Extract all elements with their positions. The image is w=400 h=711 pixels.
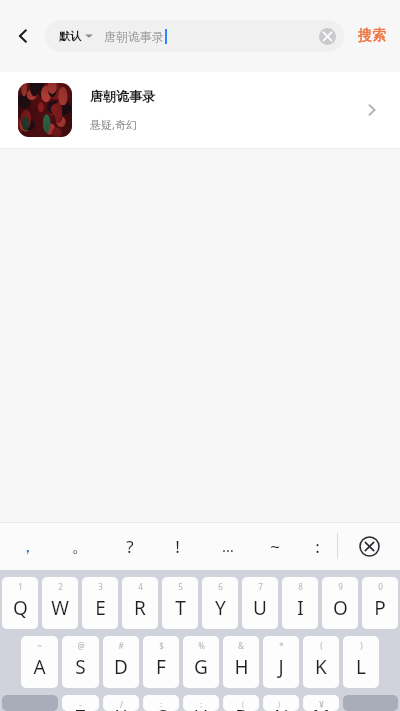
staticText: Z [75,704,86,711]
button[interactable]: 5 [162,577,198,629]
staticText: 唐朝诡事录 [104,29,164,44]
staticText: G [194,654,208,680]
staticText: Q [13,595,28,621]
button[interactable]: 唐朝诡事录 [0,72,400,148]
button[interactable]: # [103,636,139,688]
staticText: Y [215,595,226,621]
staticText: ¥ [319,699,324,710]
staticText: L [356,654,366,680]
staticText: 唐朝诡事录 [90,88,155,104]
staticText: ： [157,699,165,709]
button[interactable]: : [297,522,337,570]
staticText: C [155,704,168,711]
button[interactable]: 6 [202,577,238,629]
button[interactable]: ¥ [303,695,339,711]
button[interactable]: … [202,522,253,570]
button[interactable]: / [103,695,139,711]
staticText: U [253,595,267,621]
button[interactable]: @ [62,636,99,688]
button[interactable]: 0 [362,577,398,629]
button[interactable]: 7 [242,577,278,629]
staticText: * [279,640,284,651]
staticText: 6 [218,581,223,592]
button[interactable]: $ [143,636,179,688]
staticText: 7 [258,581,263,592]
staticText: 悬疑,奇幻 [90,117,137,132]
button[interactable]: 1 [2,577,38,629]
button[interactable]: ( [303,636,339,688]
button[interactable]: 3 [82,577,118,629]
staticText: S [75,654,86,680]
button[interactable]: ) [343,636,379,688]
staticText: V [195,704,207,711]
staticText: H [234,654,249,680]
staticText: ( [320,640,323,651]
staticText: T [175,595,186,621]
button[interactable]: ， [0,522,54,570]
button[interactable]: 9 [322,577,358,629]
button[interactable]: 8 [282,577,318,629]
button[interactable]: 。 [54,522,107,570]
staticText: （ [237,699,245,709]
staticText: E [95,595,106,621]
staticText: $ [159,640,164,651]
button[interactable]: 2 [42,577,78,629]
staticText: @ [77,640,85,651]
staticText: 。 [72,536,89,557]
staticText: ! [175,535,180,558]
staticText: 3 [98,581,103,592]
button[interactable]: * [263,636,299,688]
staticText: 1 [18,581,23,592]
staticText: % [198,640,205,651]
button[interactable]: ~ [253,522,297,570]
button[interactable]: 默认 [45,20,344,52]
button[interactable]: ~ [21,636,58,688]
staticText: O [333,595,348,621]
button[interactable]: ： [143,695,179,711]
button[interactable]: Clear text [312,21,342,51]
button[interactable]: ? [107,522,153,570]
staticText: 2 [58,581,63,592]
staticText: ， [19,536,36,557]
button[interactable]: （ [223,695,259,711]
staticText: & [238,640,244,651]
staticText: # [118,640,124,651]
staticText: J [278,654,284,680]
staticText: 8 [298,581,303,592]
staticText: X [115,704,127,711]
staticText: 5 [178,581,183,592]
button[interactable]: & [223,636,259,688]
staticText: 9 [338,581,343,592]
staticText: P [374,595,386,621]
button[interactable]: ! [153,522,202,570]
staticText: 0 [378,581,383,592]
button[interactable]: - [62,695,99,711]
staticText: I [297,595,304,621]
staticText: R [134,595,146,621]
staticText: ? [126,535,134,558]
button[interactable]: Shift [2,695,58,711]
staticText: ） [277,699,285,709]
staticText: K [315,654,327,680]
staticText: ~ [37,640,42,651]
button[interactable]: ； [183,695,219,711]
button[interactable]: Back [4,17,42,55]
button[interactable]: Delete [338,522,400,570]
staticText: M [312,704,330,711]
button[interactable]: 搜索 [344,0,400,72]
button[interactable]: % [183,636,219,688]
button[interactable]: 4 [122,577,158,629]
staticText: 4 [138,581,143,592]
staticText: A [33,654,46,680]
button[interactable]: Open detail [350,88,394,132]
staticText: ) [360,640,363,651]
staticText: ； [197,699,205,709]
staticText: 默认 [59,29,81,43]
staticText: F [156,654,166,680]
button[interactable]: ） [263,695,299,711]
staticText: : [315,535,320,558]
button[interactable]: Backspace [343,695,398,711]
staticText: / [120,699,123,710]
staticText: W [51,595,69,621]
staticText: - [79,699,82,710]
